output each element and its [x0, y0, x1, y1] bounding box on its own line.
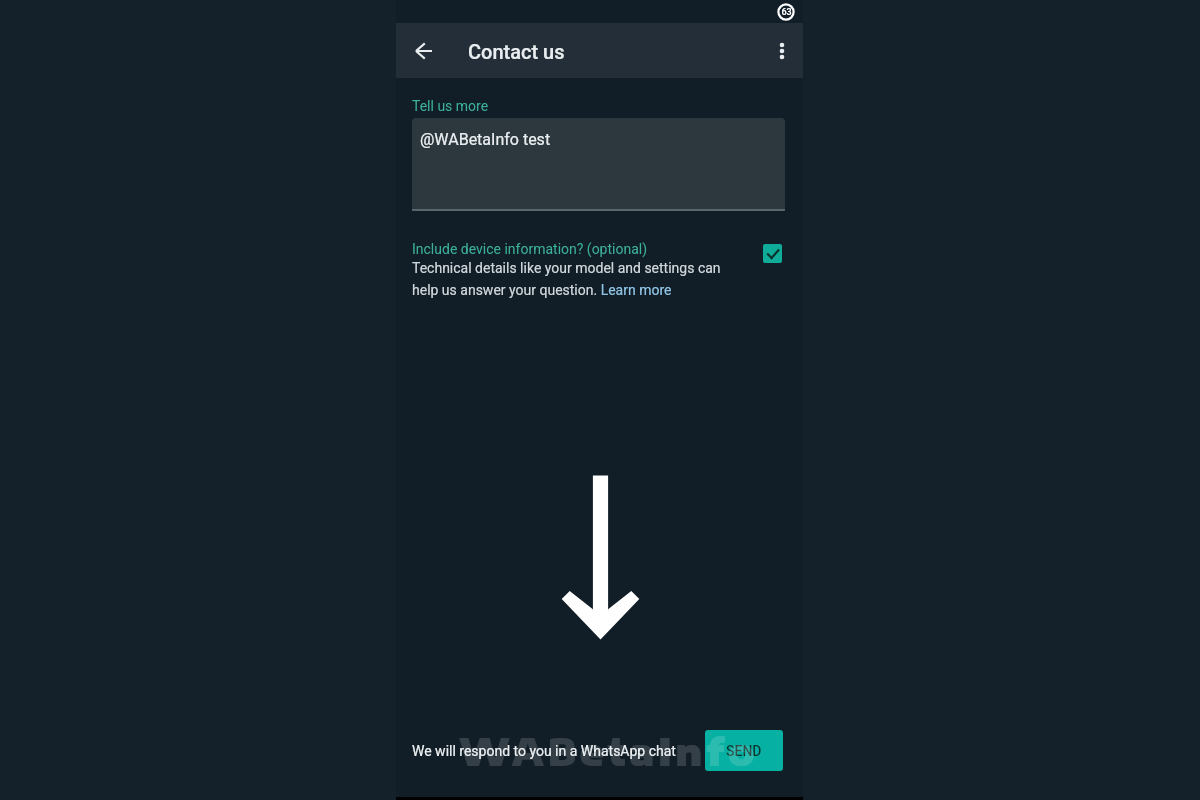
button[interactable]: More options — [763, 32, 801, 70]
staticText: Include device information? (optional) — [412, 241, 648, 257]
staticText: WABetaInfo — [459, 728, 759, 774]
button[interactable]: Include device information — [763, 244, 782, 263]
staticText: Technical details like your model and se… — [412, 260, 721, 299]
button[interactable]: Back — [405, 32, 443, 70]
button[interactable]: @WABetaInfo test — [412, 118, 785, 211]
staticText: SEND — [726, 743, 762, 759]
staticText: 63 — [781, 7, 792, 18]
staticText: We will respond to you in a WhatsApp cha… — [412, 743, 676, 759]
button[interactable]: SEND — [705, 730, 783, 771]
staticText: Contact us — [468, 40, 565, 63]
staticText: Tell us more — [412, 98, 489, 114]
staticText: @WABetaInfo test — [420, 130, 551, 149]
